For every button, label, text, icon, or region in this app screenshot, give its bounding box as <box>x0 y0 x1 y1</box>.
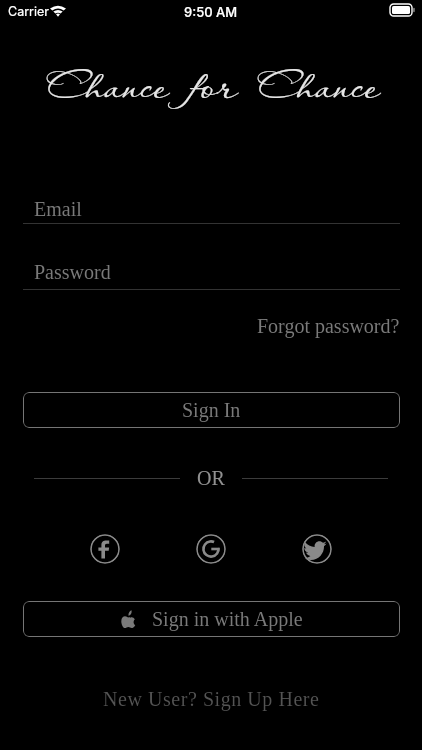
staticText: New User? Sign Up Here <box>103 688 320 710</box>
staticText: Forgot password? <box>257 315 400 337</box>
staticText: Sign in with Apple <box>152 608 303 630</box>
button[interactable]: Forgot password? <box>255 313 402 339</box>
button[interactable]: Sign in with Facebook <box>90 534 120 564</box>
staticText: Chance for Chance <box>48 55 380 116</box>
button[interactable]: Sign in with Google <box>196 534 226 564</box>
button[interactable]: New User? Sign Up Here <box>99 685 324 713</box>
staticText: Sign In <box>182 399 241 421</box>
staticText: Email <box>34 198 82 220</box>
button[interactable]: Sign In <box>23 392 400 428</box>
staticText: 9:50 AM <box>184 4 238 20</box>
button[interactable]: Sign in with Apple <box>23 601 400 637</box>
staticText: OR <box>197 467 225 489</box>
staticText: Password <box>34 261 111 283</box>
button[interactable]: Sign in with Twitter <box>302 534 332 564</box>
staticText: Carrier <box>8 4 49 19</box>
